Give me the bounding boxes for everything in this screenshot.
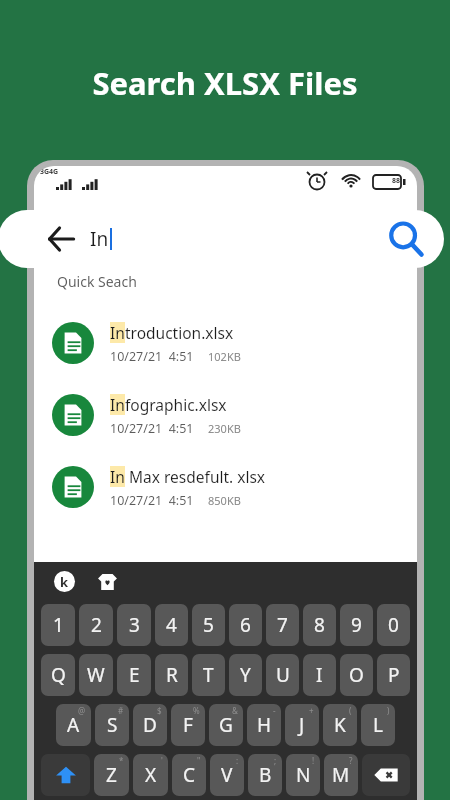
button[interactable]: M	[324, 754, 358, 796]
staticText: W	[87, 662, 105, 688]
staticText: "	[197, 755, 201, 766]
staticText: 6	[240, 612, 251, 638]
staticText: #	[118, 705, 124, 716]
button[interactable]: H	[247, 704, 281, 746]
button[interactable]: 8	[303, 604, 336, 646]
button[interactable]: P	[377, 654, 410, 696]
staticText: B	[259, 762, 272, 788]
button[interactable]: Z	[94, 754, 129, 796]
staticText: 102KB	[208, 349, 241, 364]
staticText: U	[276, 662, 290, 688]
staticText: S	[107, 712, 118, 738]
button[interactable]: Search	[388, 221, 424, 257]
button[interactable]: F	[171, 704, 205, 746]
staticText: L	[373, 712, 383, 738]
button[interactable]: E	[117, 654, 151, 696]
button[interactable]: U	[266, 654, 299, 696]
button[interactable]: A	[56, 704, 91, 746]
staticText: Search XLSX Files	[0, 62, 450, 104]
button[interactable]: 9	[340, 604, 373, 646]
staticText: (	[349, 705, 352, 716]
staticText: 0	[388, 612, 399, 638]
staticText: H	[257, 712, 272, 738]
button[interactable]: 6	[229, 604, 262, 646]
button[interactable]: S	[95, 704, 129, 746]
button[interactable]: Shift	[41, 754, 90, 796]
button[interactable]: C	[172, 754, 206, 796]
button[interactable]: B	[248, 754, 282, 796]
button[interactable]: T	[192, 654, 225, 696]
staticText: fographic.xlsx	[125, 394, 227, 415]
staticText: In	[110, 394, 125, 415]
button[interactable]: O	[340, 654, 373, 696]
staticText: P	[388, 662, 400, 688]
button[interactable]: In	[34, 379, 417, 451]
staticText: A	[67, 712, 80, 738]
button[interactable]: Backspace	[362, 754, 410, 796]
button[interactable]: Y	[229, 654, 262, 696]
staticText: In	[110, 322, 125, 343]
staticText: %	[193, 705, 200, 716]
button[interactable]: G	[209, 704, 243, 746]
button[interactable]: R	[155, 654, 188, 696]
staticText: J	[299, 712, 305, 738]
staticText: F	[183, 712, 193, 738]
button[interactable]: X	[133, 754, 168, 796]
staticText: 5	[203, 612, 214, 638]
staticText: 10/27/21 4:51	[110, 348, 194, 365]
staticText: 8	[314, 612, 325, 638]
staticText: '	[161, 755, 163, 766]
staticText: 9	[351, 612, 362, 638]
staticText: ;	[274, 755, 277, 766]
staticText: &	[232, 705, 238, 716]
button[interactable]: 1	[41, 604, 75, 646]
button[interactable]: N	[286, 754, 320, 796]
button[interactable]: K	[323, 704, 357, 746]
button[interactable]: 4	[155, 604, 188, 646]
staticText: Q	[51, 662, 66, 688]
staticText: I	[316, 662, 323, 688]
staticText: +	[309, 705, 314, 716]
button[interactable]: 3	[117, 604, 151, 646]
staticText: X	[145, 762, 157, 788]
staticText: Quick Seach	[57, 272, 137, 291]
staticText: 4	[166, 612, 177, 638]
staticText: K	[334, 712, 346, 738]
button[interactable]: 7	[266, 604, 299, 646]
staticText: k	[60, 573, 69, 591]
button[interactable]: Keyboard settings	[54, 571, 75, 592]
staticText: $	[157, 705, 162, 716]
button[interactable]: L	[361, 704, 395, 746]
staticText: 7	[277, 612, 288, 638]
button[interactable]: W	[79, 654, 113, 696]
staticText: !	[312, 755, 315, 766]
staticText: *	[119, 755, 124, 766]
button[interactable]: Q	[41, 654, 75, 696]
staticText: R	[166, 662, 178, 688]
staticText: N	[296, 762, 311, 788]
button[interactable]: In	[34, 307, 417, 379]
button[interactable]: V	[210, 754, 244, 796]
button[interactable]: Back	[46, 224, 76, 254]
button[interactable]: 0	[377, 604, 410, 646]
staticText: 10/27/21 4:51	[110, 420, 194, 437]
staticText: Y	[240, 662, 251, 688]
staticText: O	[349, 662, 364, 688]
staticText: 1	[53, 612, 64, 638]
staticText: 3G	[40, 167, 50, 177]
button[interactable]: 5	[192, 604, 225, 646]
button[interactable]: D	[133, 704, 167, 746]
staticText: Max resdefult. xlsx	[125, 466, 266, 487]
staticText: Z	[106, 762, 117, 788]
staticText: @	[78, 705, 86, 716]
button[interactable]: I	[303, 654, 336, 696]
button[interactable]: Back	[0, 210, 444, 268]
button[interactable]: 2	[79, 604, 113, 646]
staticText: 10/27/21 4:51	[110, 492, 194, 509]
staticText: 88	[392, 176, 401, 186]
button[interactable]: J	[285, 704, 319, 746]
button[interactable]: In	[34, 451, 417, 523]
button[interactable]: Theme	[97, 571, 118, 592]
staticText: E	[129, 662, 140, 688]
staticText: :	[236, 755, 239, 766]
